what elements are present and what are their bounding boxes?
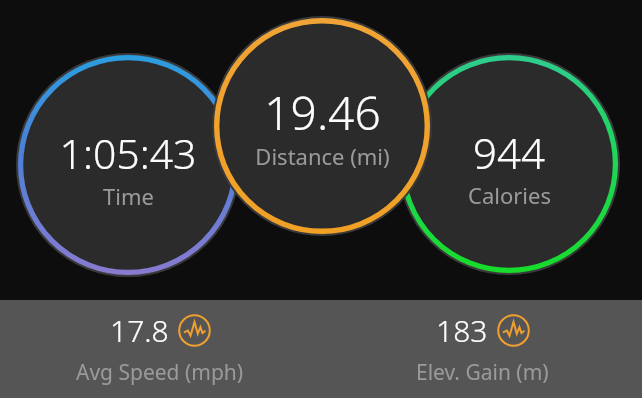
button[interactable]: Distance 19.46 miles: [212, 16, 432, 236]
staticText: Avg Speed (mph): [76, 358, 244, 387]
button[interactable]: 183: [416, 310, 549, 387]
other: Heart rate based metric: [178, 314, 211, 347]
staticText: 17.8: [110, 310, 169, 351]
staticText: 1:05:43: [59, 125, 197, 181]
staticText: 944: [473, 124, 545, 181]
staticText: 183: [436, 310, 488, 351]
staticText: Time: [103, 181, 154, 211]
button[interactable]: 17.8: [76, 310, 244, 387]
staticText: Elev. Gain (m): [416, 358, 549, 387]
button[interactable]: Time 1:05:43: [16, 53, 240, 277]
other: Heart rate based metric: [497, 314, 530, 347]
staticText: Calories: [468, 180, 551, 210]
staticText: 19.46: [264, 81, 381, 144]
button[interactable]: Calories 944: [398, 53, 620, 275]
staticText: Distance (mi): [255, 141, 390, 171]
